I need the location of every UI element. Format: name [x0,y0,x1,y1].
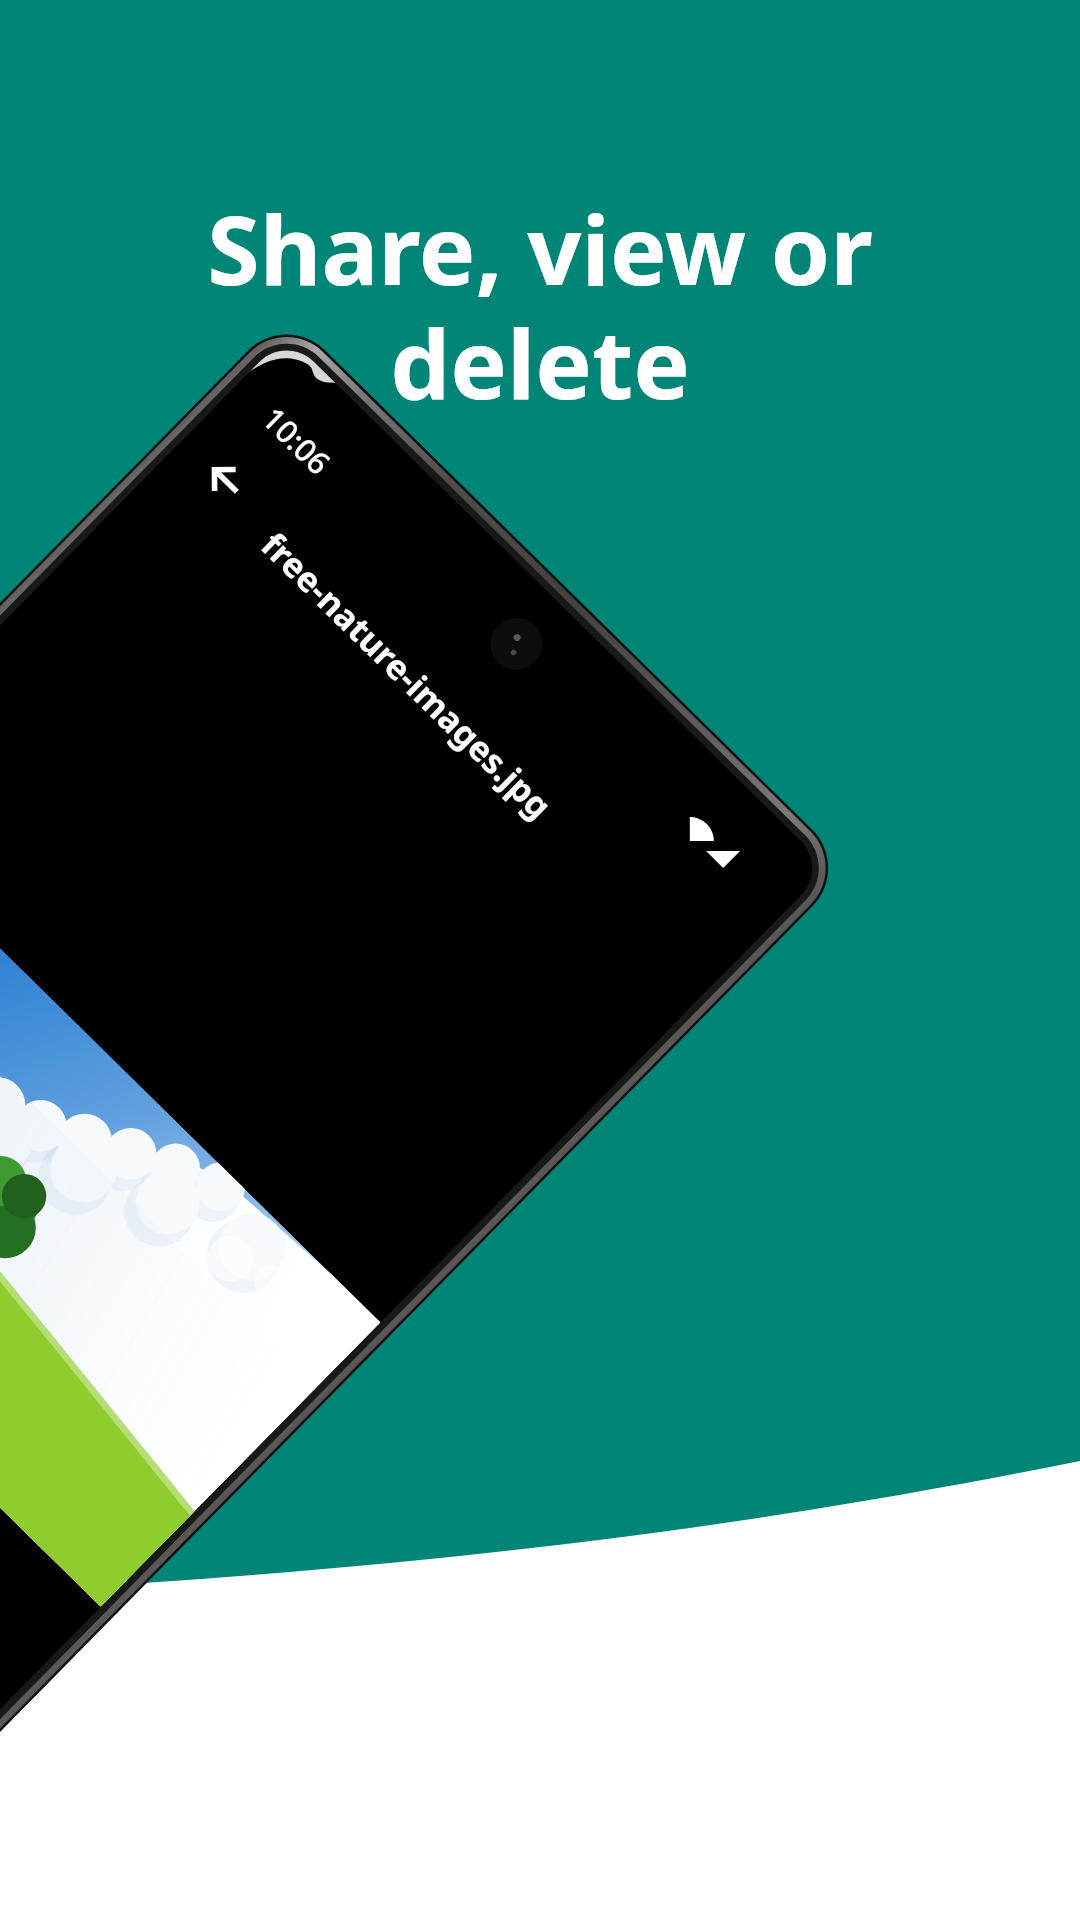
button[interactable]: free-nature-images.jpg [240,497,614,867]
button[interactable]: Back [178,435,251,508]
staticText: free-nature-images.jpg [252,522,562,828]
staticText: Share, view or delete [140,183,940,427]
button[interactable]: free-nature-images.jpg photo [0,789,381,1607]
staticText: 10:06 [254,398,340,484]
